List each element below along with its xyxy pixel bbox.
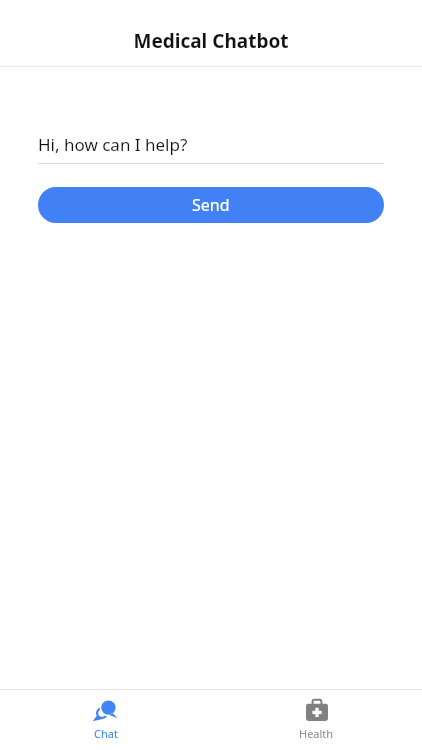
staticText: Medical Chatbot [133,28,289,54]
button[interactable]: Hi, how can I help? [38,125,384,163]
button[interactable]: Health [211,690,422,750]
staticText: Send [192,194,230,216]
button[interactable]: Send [38,187,384,223]
button[interactable]: Chat [0,690,211,750]
staticText: Health [299,726,334,741]
staticText: Hi, how can I help? [38,133,188,156]
staticText: Chat [94,726,118,741]
